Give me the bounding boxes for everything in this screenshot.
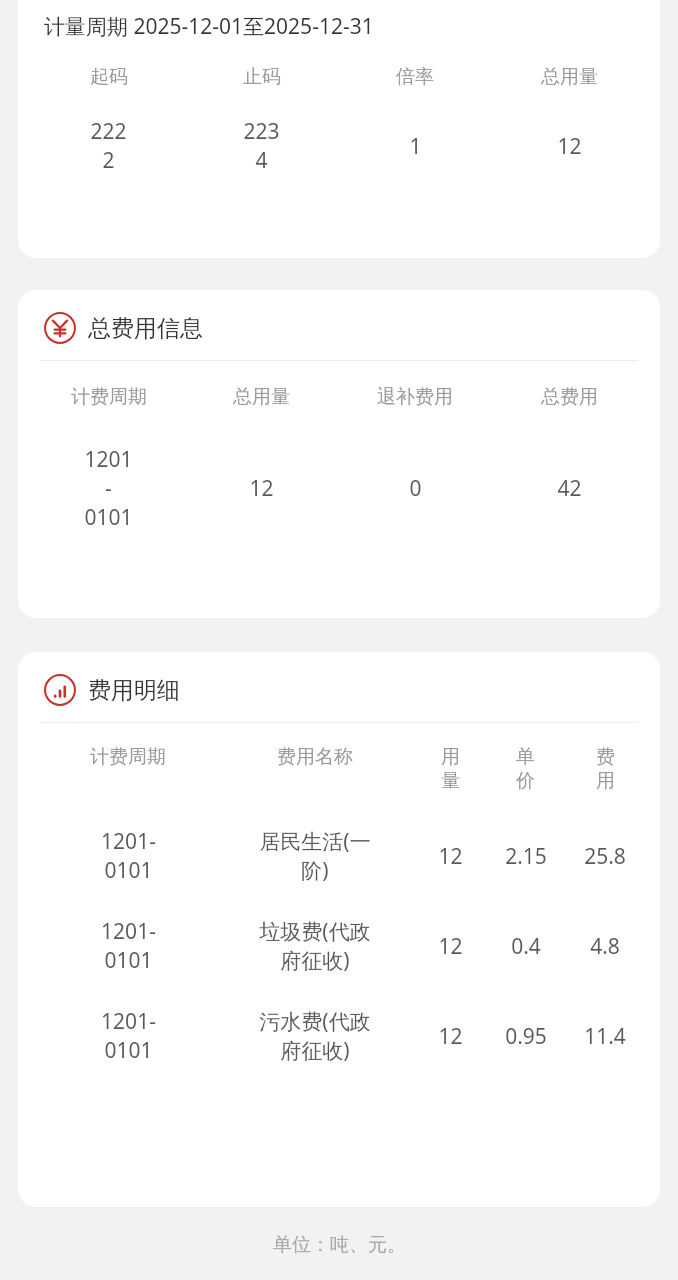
staticText: 4 xyxy=(255,146,268,175)
staticText: 1 xyxy=(409,132,422,161)
staticText: 1201 xyxy=(84,445,133,474)
staticText: 费 xyxy=(596,745,615,769)
staticText: 11.4 xyxy=(584,1022,626,1051)
staticText: 12 xyxy=(438,842,463,871)
button[interactable]: Total fee xyxy=(44,312,660,344)
staticText: 计费周期 xyxy=(71,385,147,409)
staticText: - xyxy=(105,474,112,503)
staticText: 阶) xyxy=(301,856,329,885)
staticText: 费用名称 xyxy=(277,745,353,769)
staticText: 0101 xyxy=(104,1036,153,1065)
staticText: 223 xyxy=(243,117,280,146)
staticText: 计费周期 xyxy=(90,745,166,769)
staticText: 2.15 xyxy=(505,842,547,871)
staticText: 垃圾费(代政 xyxy=(259,917,371,946)
staticText: 12 xyxy=(438,1022,463,1051)
staticText: 用 xyxy=(596,769,615,793)
other: Total fee xyxy=(44,312,76,344)
staticText: 居民生活(一 xyxy=(259,827,371,856)
staticText: 4.8 xyxy=(590,932,620,961)
staticText: 污水费(代政 xyxy=(259,1007,371,1036)
staticText: 12 xyxy=(557,132,582,161)
staticText: 总用量 xyxy=(541,65,598,89)
staticText: 222 xyxy=(90,117,127,146)
staticText: 0101 xyxy=(104,946,153,975)
staticText: 止码 xyxy=(243,65,281,89)
staticText: 12 xyxy=(249,474,274,503)
staticText: 1201- xyxy=(101,827,156,856)
staticText: 倍率 xyxy=(396,65,434,89)
staticText: 总用量 xyxy=(233,385,290,409)
button[interactable]: Fee detail xyxy=(18,652,660,1207)
staticText: 2 xyxy=(102,146,115,175)
staticText: 0101 xyxy=(104,856,153,885)
staticText: 起码 xyxy=(90,65,128,89)
staticText: 价 xyxy=(516,769,535,793)
staticText: 0.4 xyxy=(511,932,541,961)
staticText: 单 xyxy=(516,745,535,769)
staticText: 量 xyxy=(441,769,460,793)
staticText: 府征收) xyxy=(280,1036,350,1065)
staticText: 1201- xyxy=(101,1007,156,1036)
staticText: 42 xyxy=(557,474,582,503)
staticText: 12 xyxy=(438,932,463,961)
staticText: 0.95 xyxy=(505,1022,547,1051)
other: Fee detail xyxy=(44,674,76,706)
staticText: 单位：吨、元。 xyxy=(273,1233,406,1257)
staticText: 25.8 xyxy=(584,842,626,871)
staticText: 用 xyxy=(441,745,460,769)
staticText: 0 xyxy=(409,474,422,503)
button[interactable]: Fee detail xyxy=(44,674,660,706)
staticText: 府征收) xyxy=(280,946,350,975)
button[interactable]: Total fee xyxy=(18,290,660,618)
staticText: 总费用信息 xyxy=(88,314,203,343)
staticText: 总费用 xyxy=(541,385,598,409)
staticText: 计量周期 2025-12-01至2025-12-31 xyxy=(44,12,374,41)
staticText: 费用明细 xyxy=(88,676,180,705)
staticText: 0101 xyxy=(84,503,133,532)
staticText: 1201- xyxy=(101,917,156,946)
staticText: 退补费用 xyxy=(377,385,453,409)
button[interactable]: 计量周期 2025-12-01至2025-12-31 xyxy=(18,0,660,258)
